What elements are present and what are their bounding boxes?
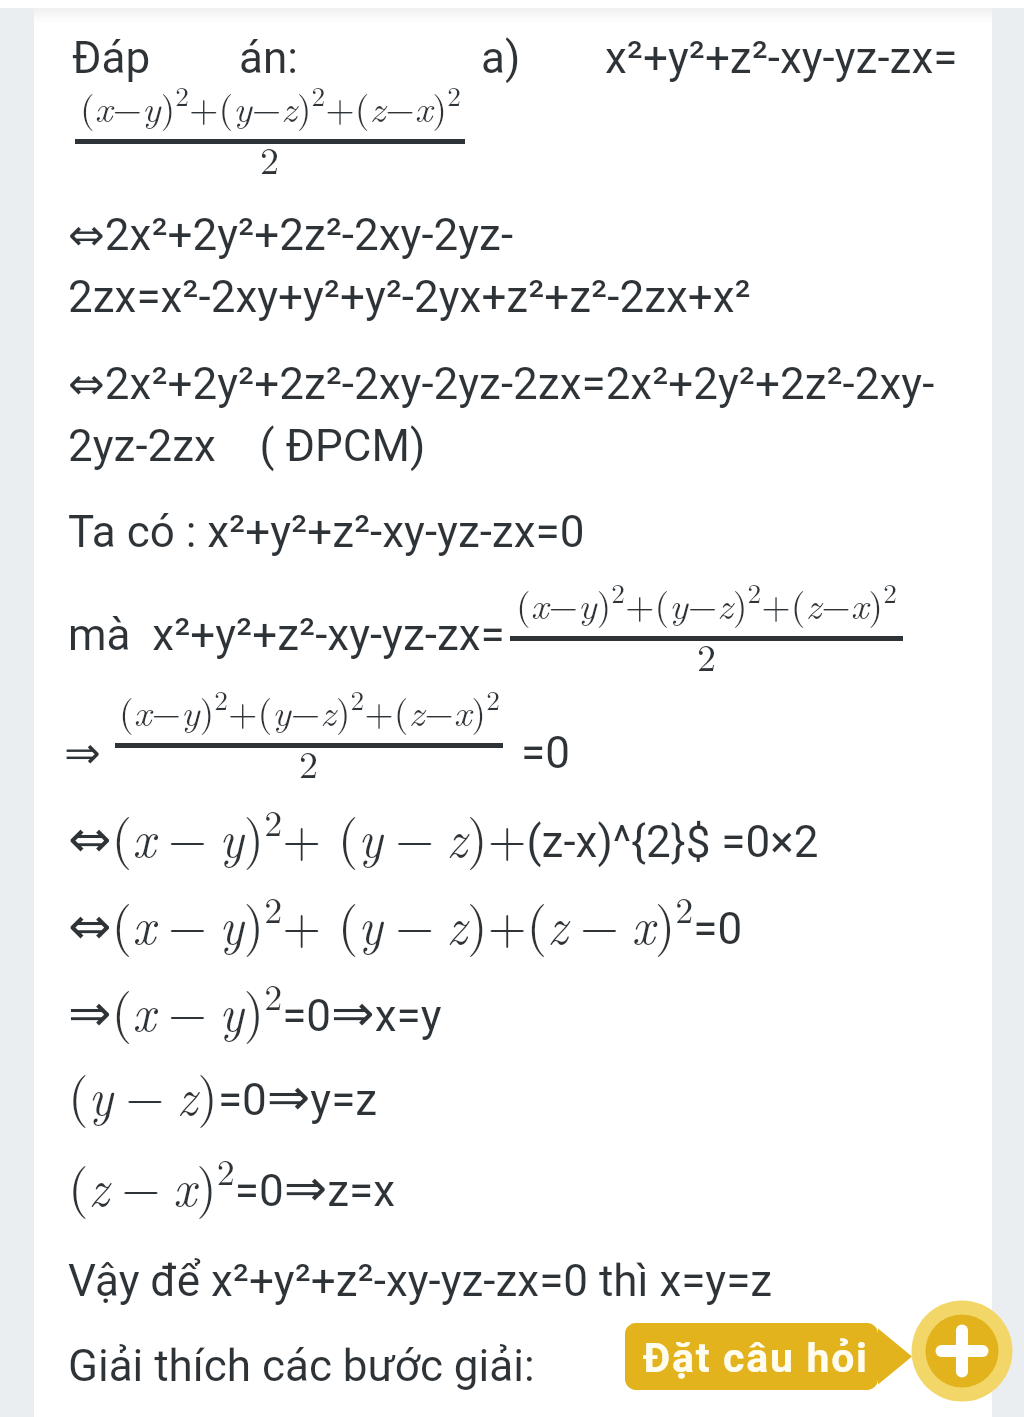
staticText: (z − x)2=0⇒z=x [68,1144,396,1221]
staticText: =0 [521,727,570,779]
staticText: Giải thích các bước giải: [68,1340,535,1392]
staticText: 2yz-2zx ( ĐPCM) [68,420,426,472]
staticText: mà x²+y²+z²-xy-yz-zx= [68,609,505,661]
staticText: ⇔2x²+2y²+2z²-2xy-2yz- [68,209,514,261]
staticText: Ta có : x²+y²+z²-xy-yz-zx=0 [68,506,585,558]
staticText: Vậy để x²+y²+z²-xy-yz-zx=0 thì x=y=z [68,1255,773,1307]
staticText: ⇔(x − y)2+ (y − z)+(z − x)2=0 [68,882,743,959]
staticText: 2 [299,735,319,789]
staticText: (x−y)2+(y−z)2+(z−x)2 [516,572,897,630]
staticText: án: [239,32,298,84]
staticText: Đặt câu hỏi [643,1334,869,1382]
staticText: (x−y)2+(y−z)2+(z−x)2 [119,679,500,737]
staticText: (x−y)2+(y−z)2+(z−x)2 [80,75,461,133]
staticText: ⇔2x²+2y²+2z²-2xy-2yz-2zx=2x²+2y²+2z²-2xy… [68,358,935,410]
staticText: (y − z)=0⇒y=z [68,1055,378,1130]
staticText: 2 [260,131,280,185]
staticText: 2 [697,628,717,682]
staticText: x²+y²+z²-xy-yz-zx= [605,32,958,84]
staticText: 2zx=x²-2xy+y²+y²-2yx+z²+z²-2zx+x² [68,271,751,323]
staticText: ⇒(x − y)2=0⇒x=y [68,969,442,1046]
staticText: a) [481,32,521,84]
staticText: ⇔(x − y)2+ (y − z)+(z-x)^{2}$ =0×2 [68,795,819,872]
button[interactable]: Đặt câu hỏi [625,1323,912,1390]
staticText: ⇒ [64,727,101,778]
staticText: Đáp [72,32,151,84]
button[interactable]: Đặt câu hỏi [911,1300,1013,1402]
